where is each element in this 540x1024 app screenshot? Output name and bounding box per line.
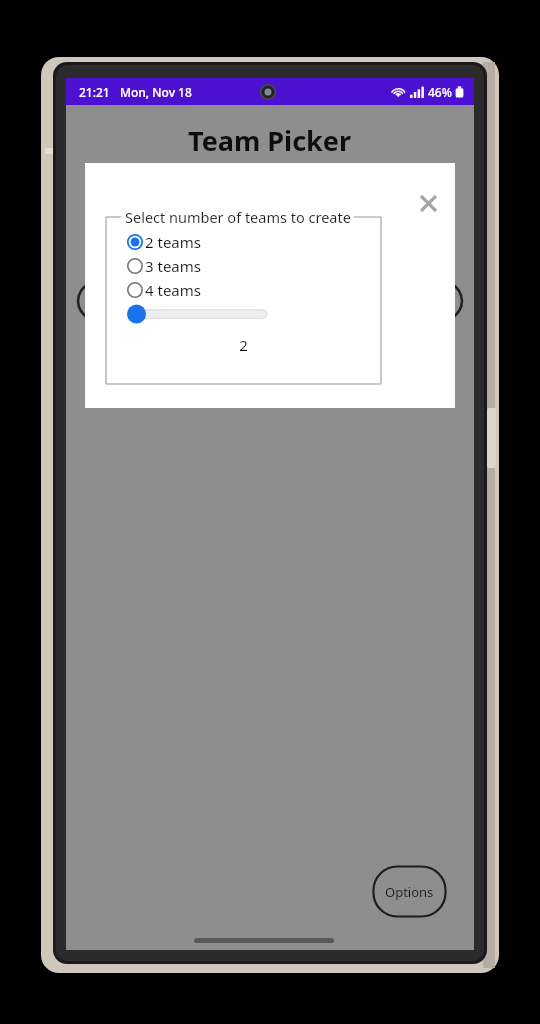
staticText: Mon, Nov 18 xyxy=(120,84,192,100)
button[interactable]: 3 teams xyxy=(127,255,201,277)
staticText: Options xyxy=(385,883,434,901)
button[interactable]: Previous xyxy=(78,275,158,327)
staticText: 4 teams xyxy=(145,280,201,300)
staticText: 2 teams xyxy=(145,232,201,252)
button[interactable]: Close xyxy=(410,185,446,221)
button[interactable]: Number of teams slider xyxy=(127,303,269,325)
staticText: 2 xyxy=(239,335,248,355)
staticText: 3 teams xyxy=(145,256,201,276)
button[interactable]: Options xyxy=(372,865,447,918)
button[interactable]: 2 teams xyxy=(127,231,201,253)
staticText: 46% xyxy=(428,84,452,100)
staticText: 21:21 xyxy=(79,84,110,100)
button[interactable]: Next xyxy=(382,275,462,327)
staticText: Team Picker xyxy=(188,122,352,159)
button[interactable]: 4 teams xyxy=(127,279,201,301)
staticText: Select number of teams to create xyxy=(125,207,351,227)
